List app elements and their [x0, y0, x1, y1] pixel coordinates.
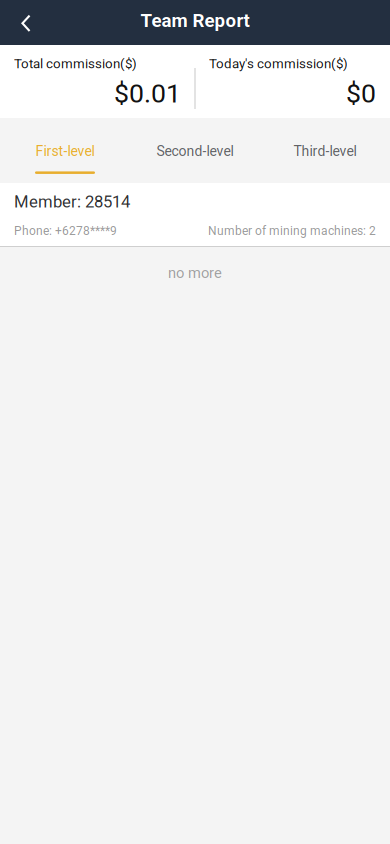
staticText: Team Report — [140, 10, 249, 31]
staticText: Total commission($) — [14, 56, 137, 72]
button[interactable]: Back — [0, 0, 48, 46]
staticText: Phone: +6278****9 — [14, 224, 117, 238]
button[interactable]: Second-level — [130, 118, 260, 183]
button[interactable]: Member: 28514 — [0, 183, 390, 246]
button[interactable]: First-level — [0, 118, 130, 183]
staticText: $0 — [346, 78, 376, 109]
button[interactable]: Third-level — [260, 118, 390, 183]
staticText: no more — [168, 264, 222, 282]
staticText: Member: 28514 — [14, 192, 130, 211]
staticText: $0.01 — [114, 78, 181, 109]
staticText: First-level — [35, 143, 94, 159]
staticText: Second-level — [156, 143, 233, 159]
staticText: Third-level — [293, 143, 356, 159]
staticText: Number of mining machines: 2 — [208, 224, 376, 238]
staticText: Today's commission($) — [209, 56, 348, 72]
